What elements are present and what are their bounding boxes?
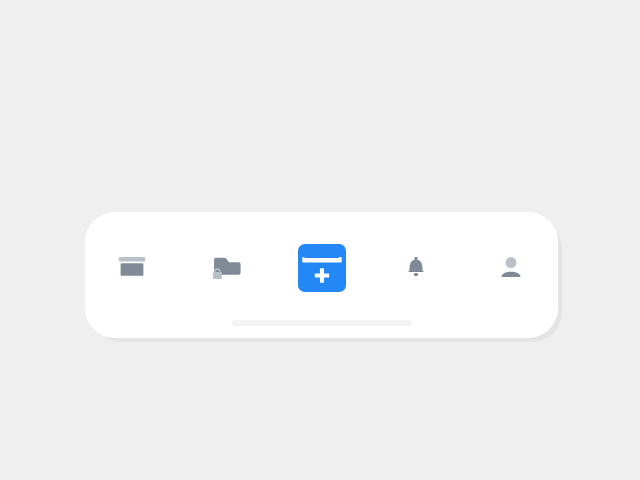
button[interactable]: Storage bbox=[100, 236, 164, 300]
button[interactable]: Add folder bbox=[290, 236, 354, 300]
button[interactable]: Secure folder bbox=[195, 236, 259, 300]
button[interactable]: Notifications bbox=[384, 236, 448, 300]
button[interactable]: Profile bbox=[479, 236, 543, 300]
